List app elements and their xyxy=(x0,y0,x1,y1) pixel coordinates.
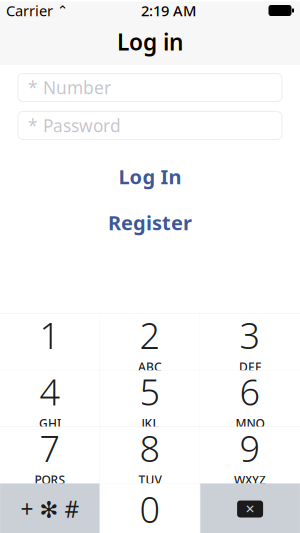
button[interactable]: 7 xyxy=(0,427,100,483)
button[interactable]: Delete xyxy=(200,483,300,533)
staticText: GHI xyxy=(39,415,61,431)
staticText: ABC xyxy=(138,359,162,375)
staticText: 7 xyxy=(39,424,60,472)
staticText: DEF xyxy=(239,359,261,375)
staticText: 2 xyxy=(139,311,160,359)
staticText: 3 xyxy=(240,311,261,359)
staticText: 2:19 AM xyxy=(141,1,196,20)
staticText: 4 xyxy=(39,368,60,415)
button[interactable]: 8 xyxy=(100,427,200,483)
button[interactable]: 5 xyxy=(100,370,200,426)
staticText: Log in xyxy=(117,27,183,57)
staticText: 0 xyxy=(139,485,160,533)
staticText: TUV xyxy=(138,472,161,488)
button[interactable]: 2 xyxy=(100,314,200,370)
staticText: 6 xyxy=(240,368,261,415)
staticText: ✕ xyxy=(245,502,255,516)
button[interactable]: Register xyxy=(0,212,300,232)
staticText: ⌃ xyxy=(53,3,68,18)
button[interactable]: 0 xyxy=(100,483,200,533)
staticText: 5 xyxy=(139,368,160,415)
button[interactable]: 3 xyxy=(200,314,300,370)
staticText: WXYZ xyxy=(234,472,266,488)
button[interactable]: 9 xyxy=(200,427,300,483)
staticText: PQRS xyxy=(34,472,65,488)
staticText: + ✻ # xyxy=(20,494,79,524)
button[interactable]: 6 xyxy=(200,370,300,426)
button[interactable]: 1 xyxy=(0,314,100,370)
button[interactable]: Log In xyxy=(0,166,300,186)
staticText: Log In xyxy=(118,163,181,190)
staticText: Register xyxy=(108,209,192,236)
staticText: * Number xyxy=(28,76,111,99)
staticText: * Password xyxy=(28,114,121,137)
staticText: 1 xyxy=(39,311,60,359)
staticText: Carrier xyxy=(6,1,53,20)
staticText: MNO xyxy=(236,415,265,431)
staticText: JKL xyxy=(141,415,158,431)
button[interactable]: + ✻ # xyxy=(0,483,100,533)
button[interactable]: 4 xyxy=(0,370,100,426)
staticText: 8 xyxy=(139,424,160,472)
staticText: 9 xyxy=(240,424,261,472)
